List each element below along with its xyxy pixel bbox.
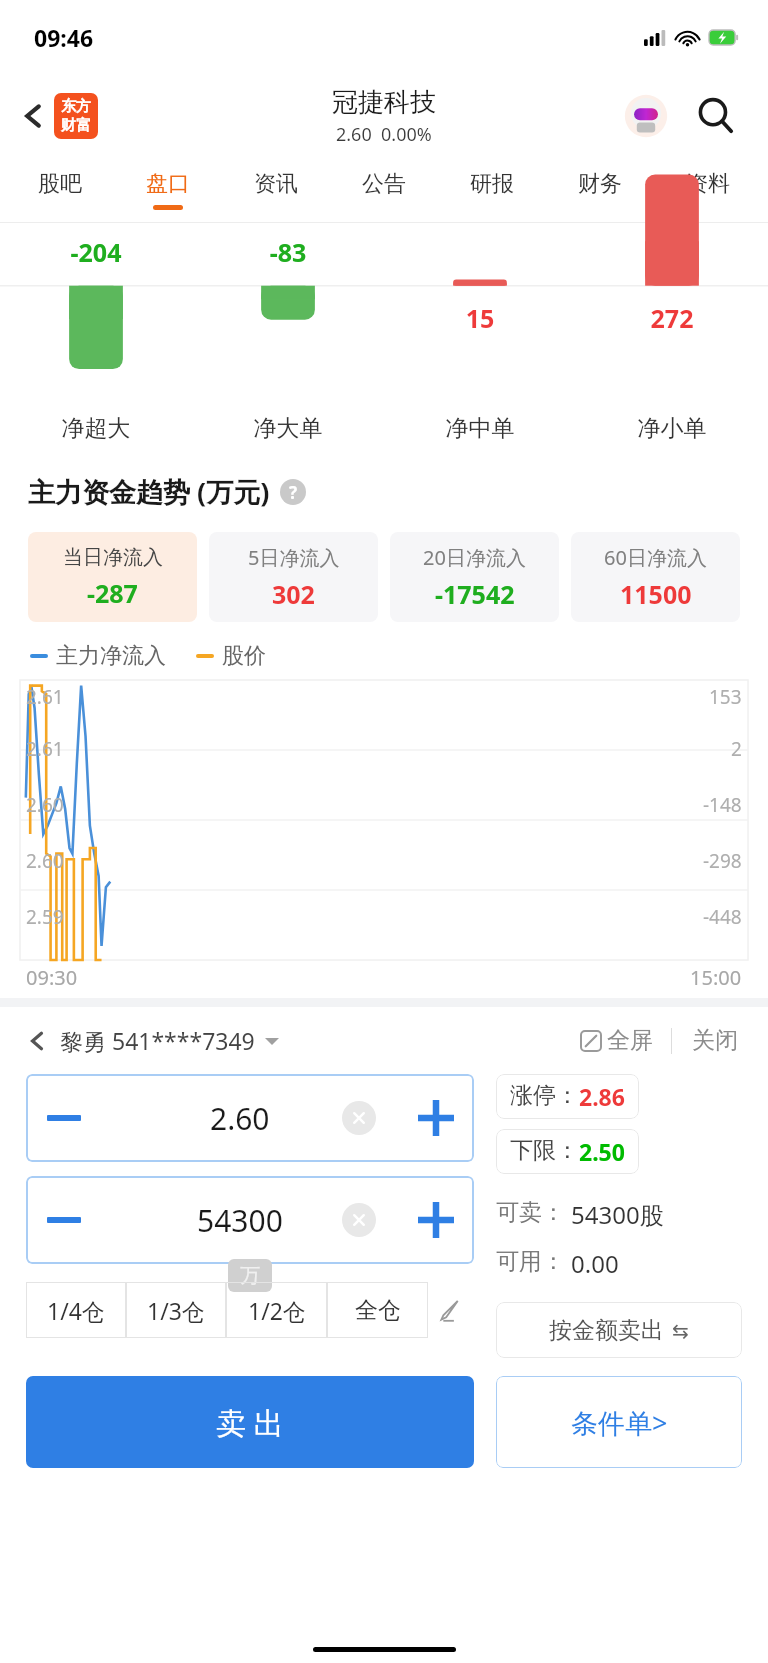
button[interactable]: 涨停： bbox=[496, 1074, 639, 1119]
button[interactable]: AI assistant bbox=[620, 90, 672, 142]
staticText: 15 bbox=[384, 301, 576, 335]
staticText: 可卖： bbox=[496, 1198, 565, 1227]
staticText: 2 bbox=[731, 736, 742, 762]
staticText: 股吧 bbox=[38, 170, 82, 198]
button[interactable]: 关闭 bbox=[688, 1022, 742, 1059]
button[interactable]: 公告 bbox=[330, 157, 438, 223]
staticText: 按金额卖出 bbox=[549, 1316, 664, 1345]
staticText: -148 bbox=[703, 792, 742, 818]
staticText: 20日净流入 bbox=[423, 544, 526, 571]
staticText: 15:00 bbox=[690, 964, 742, 991]
other: Back bbox=[30, 1029, 44, 1053]
button[interactable]: Back bbox=[18, 87, 104, 145]
staticText: 净超大 bbox=[0, 414, 192, 443]
staticText: 股价 bbox=[222, 642, 266, 670]
staticText: 主力净流入 bbox=[56, 642, 166, 670]
staticText: 09:30 bbox=[26, 964, 78, 991]
button[interactable]: 资讯 bbox=[222, 157, 330, 223]
button[interactable]: 60日净流入 bbox=[571, 532, 740, 622]
staticText: 公告 bbox=[362, 170, 406, 198]
staticText: 09:46 bbox=[34, 22, 94, 53]
staticText: 全屏 bbox=[607, 1026, 653, 1055]
staticText: 54300股 bbox=[571, 1198, 664, 1231]
button[interactable]: 资料 bbox=[654, 157, 762, 223]
staticText: 2.60 bbox=[26, 792, 64, 818]
staticText: 净中单 bbox=[384, 414, 576, 443]
button[interactable]: Edit bbox=[428, 1282, 474, 1338]
button[interactable]: 条件单> bbox=[496, 1376, 742, 1468]
staticText: 2.59 bbox=[26, 904, 64, 930]
staticText: 0.00 bbox=[571, 1247, 619, 1280]
staticText: 1/4仓 bbox=[47, 1295, 105, 1326]
button[interactable]: 按金额卖出 bbox=[496, 1302, 742, 1358]
staticText: -83 bbox=[192, 235, 384, 269]
staticText: 万 bbox=[240, 1263, 260, 1288]
staticText: 净大单 bbox=[192, 414, 384, 443]
staticText: 60日净流入 bbox=[604, 544, 707, 571]
staticText: 东方 bbox=[61, 97, 91, 116]
staticText: 2.86 bbox=[579, 1081, 625, 1112]
button[interactable]: 全仓 bbox=[327, 1282, 428, 1338]
staticText: 2.61 bbox=[26, 736, 64, 762]
button[interactable]: 股吧 bbox=[6, 157, 114, 223]
staticText: 2.60 0.00% bbox=[336, 122, 432, 147]
staticText: 全仓 bbox=[355, 1296, 401, 1325]
button[interactable]: Back bbox=[26, 1021, 283, 1060]
staticText: 关闭 bbox=[692, 1026, 738, 1055]
button[interactable]: Decrease bbox=[26, 1074, 102, 1162]
staticText: 2.60 bbox=[210, 1098, 270, 1139]
staticText: 可用： bbox=[496, 1247, 565, 1276]
button[interactable]: 卖 出 bbox=[26, 1376, 474, 1468]
staticText: 153 bbox=[709, 684, 742, 710]
staticText: 主力资金趋势 (万元) bbox=[28, 473, 270, 510]
button[interactable]: Clear bbox=[342, 1203, 376, 1237]
button[interactable]: Increase bbox=[398, 1074, 474, 1162]
staticText: -287 bbox=[87, 576, 138, 610]
staticText: ⇆ bbox=[672, 1319, 689, 1342]
staticText: 54300 bbox=[197, 1200, 283, 1241]
staticText: 卖 出 bbox=[216, 1402, 284, 1443]
staticText: 11500 bbox=[620, 577, 692, 611]
button[interactable]: Increase bbox=[398, 1176, 474, 1264]
staticText: 1/3仓 bbox=[147, 1295, 205, 1326]
staticText: 条件单> bbox=[571, 1404, 668, 1441]
staticText: 2.61 bbox=[26, 684, 64, 710]
button[interactable]: Help bbox=[280, 479, 306, 505]
button[interactable]: 盘口 bbox=[114, 157, 222, 223]
staticText: 302 bbox=[272, 577, 315, 611]
staticText: 盘口 bbox=[146, 170, 190, 198]
staticText: 272 bbox=[576, 301, 768, 335]
button[interactable]: 全屏 bbox=[575, 1022, 657, 1059]
staticText: 2.50 bbox=[579, 1136, 625, 1167]
button[interactable]: 当日净流入 bbox=[28, 532, 197, 622]
staticText: 1/2仓 bbox=[248, 1295, 306, 1326]
button[interactable]: 1/4仓 bbox=[26, 1282, 126, 1338]
staticText: ? bbox=[289, 481, 298, 504]
button[interactable]: 1/2仓 bbox=[226, 1282, 327, 1338]
staticText: 净小单 bbox=[576, 414, 768, 443]
button[interactable]: 财务 bbox=[546, 157, 654, 223]
staticText: 黎勇 541****7349 bbox=[60, 1025, 255, 1056]
staticText: 财务 bbox=[578, 170, 622, 198]
button[interactable]: 研报 bbox=[438, 157, 546, 223]
staticText: 冠捷科技 bbox=[332, 86, 436, 119]
staticText: 2.60 bbox=[26, 848, 64, 874]
button[interactable]: 5日净流入 bbox=[209, 532, 378, 622]
staticText: 资料 bbox=[686, 170, 730, 198]
button[interactable]: Clear bbox=[342, 1101, 376, 1135]
button[interactable]: Decrease bbox=[26, 1176, 102, 1264]
staticText: 当日净流入 bbox=[63, 545, 163, 570]
staticText: 研报 bbox=[470, 170, 514, 198]
staticText: -17542 bbox=[435, 577, 515, 611]
staticText: 下限： bbox=[510, 1136, 579, 1165]
button[interactable]: 下限： bbox=[496, 1129, 639, 1174]
button[interactable]: Search bbox=[690, 90, 742, 142]
staticText: 5日净流入 bbox=[248, 544, 340, 571]
button[interactable]: 1/3仓 bbox=[126, 1282, 226, 1338]
staticText: -298 bbox=[703, 848, 742, 874]
staticText: -448 bbox=[703, 904, 742, 930]
staticText: 资讯 bbox=[254, 170, 298, 198]
button[interactable]: 20日净流入 bbox=[390, 532, 559, 622]
staticText: -204 bbox=[0, 235, 192, 269]
staticText: 涨停： bbox=[510, 1081, 579, 1110]
